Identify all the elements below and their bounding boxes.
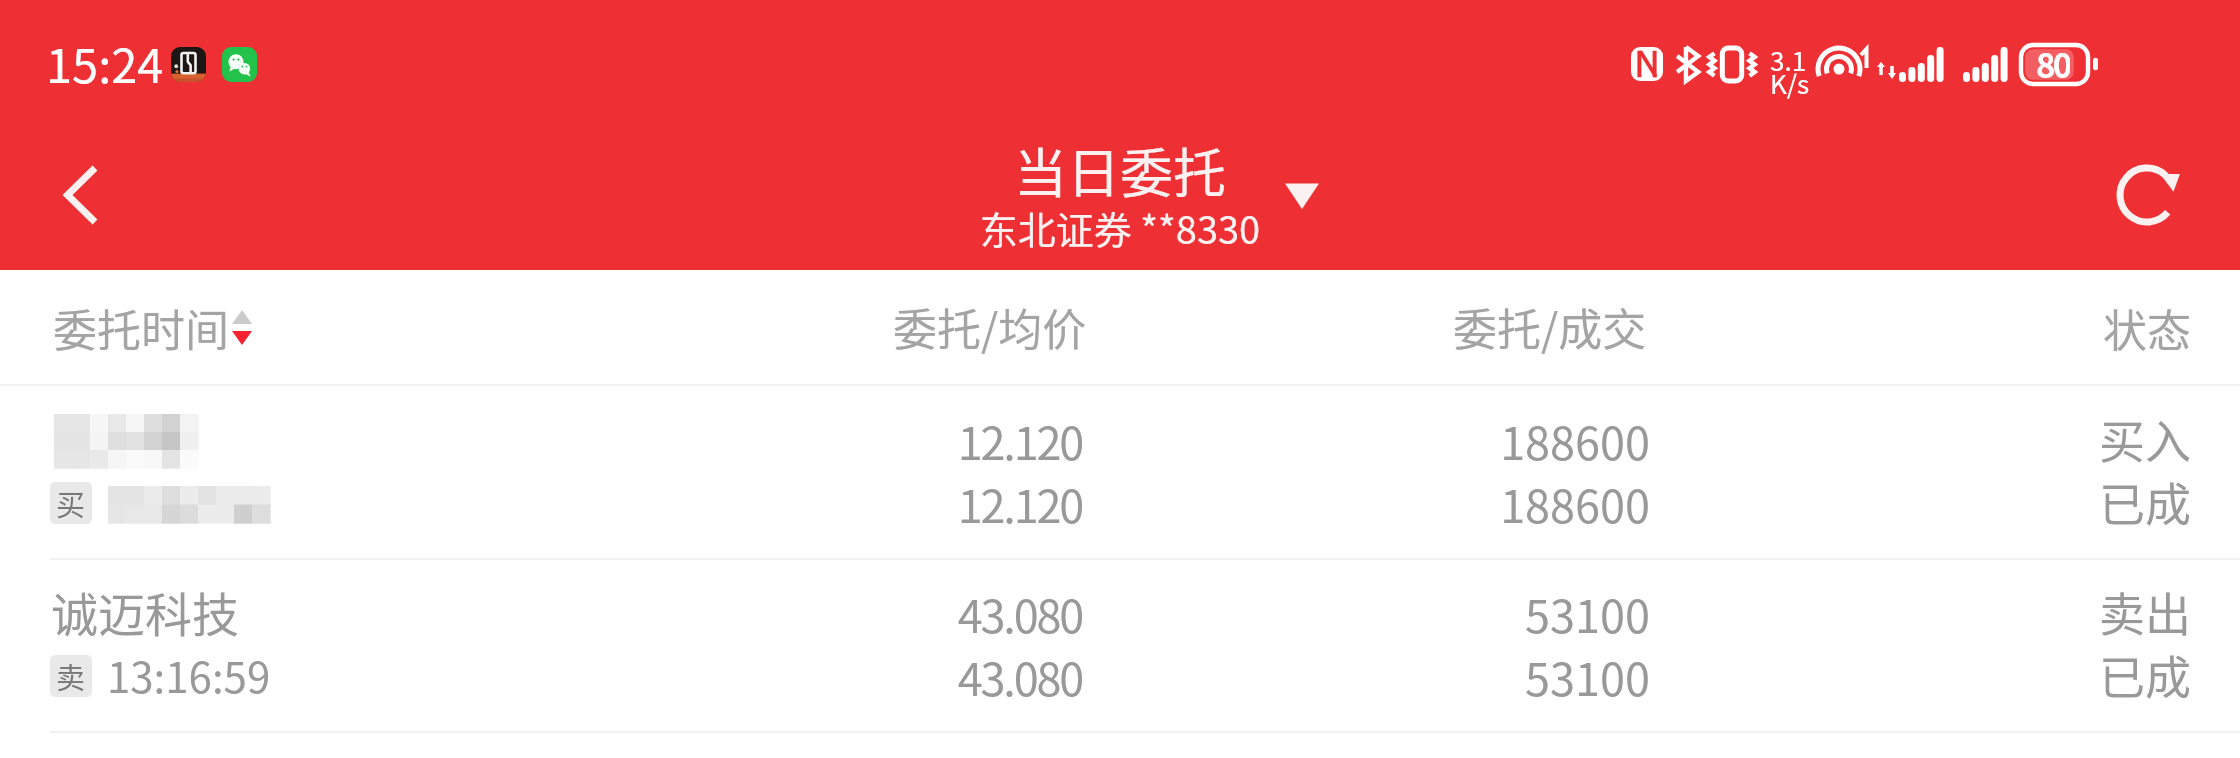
staticText: 188600: [1150, 471, 1650, 536]
staticText: 委托时间: [53, 296, 229, 360]
staticText: 15:24: [46, 28, 164, 96]
staticText: 已成: [1691, 641, 2191, 708]
button[interactable]: 委托时间: [40, 282, 268, 374]
staticText: 已成: [1691, 468, 2191, 535]
staticText: 卖出: [1691, 578, 2191, 645]
staticText: 3.1: [1770, 41, 1807, 79]
staticText: 卖: [56, 655, 86, 697]
staticText: 12.120: [582, 471, 1082, 536]
button[interactable]: Refresh: [2090, 135, 2210, 255]
staticText: 诚迈科技: [51, 577, 239, 645]
staticText: 80: [2036, 40, 2070, 79]
staticText: 买入: [1691, 405, 2191, 472]
staticText: 东北证券 **8330: [0, 200, 2240, 255]
staticText: 188600: [1150, 408, 1650, 473]
staticText: 43.080: [582, 581, 1082, 646]
staticText: 43.080: [582, 644, 1082, 709]
staticText: 委托/成交: [1453, 295, 1647, 359]
staticText: K/s: [1770, 64, 1810, 102]
staticText: 13:16:59: [107, 644, 271, 705]
button[interactable]: 买: [0, 386, 2240, 558]
staticText: 买: [56, 482, 86, 524]
button[interactable]: Back: [20, 135, 140, 255]
staticText: 委托/均价: [893, 295, 1087, 359]
staticText: 状态: [2103, 296, 2191, 360]
staticText: 12.120: [582, 408, 1082, 473]
button[interactable]: Switch account: [1256, 149, 1348, 241]
staticText: 53100: [1150, 581, 1650, 646]
button[interactable]: 诚迈科技: [0, 559, 2240, 731]
staticText: 53100: [1150, 644, 1650, 709]
staticText: 当日委托: [0, 132, 2240, 209]
